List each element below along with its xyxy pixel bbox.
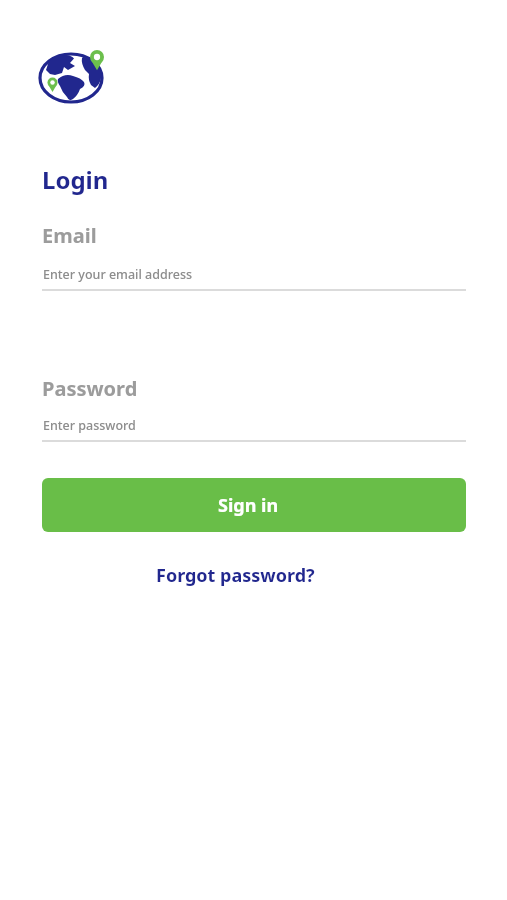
button[interactable]: Enter your email address — [42, 258, 466, 291]
staticText: Enter password — [43, 417, 136, 434]
button[interactable]: Enter password — [42, 410, 466, 442]
staticText: Enter your email address — [43, 266, 193, 283]
staticText: Sign in — [218, 493, 279, 518]
button[interactable]: Sign in — [42, 478, 466, 532]
staticText: Login — [42, 163, 109, 196]
staticText: Email — [42, 222, 97, 249]
staticText: Password — [42, 375, 138, 402]
button[interactable]: Forgot password? — [156, 563, 315, 588]
